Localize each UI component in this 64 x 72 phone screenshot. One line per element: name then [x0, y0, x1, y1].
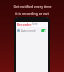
staticText: it is recording or not [15, 11, 49, 16]
staticText: Auto record [21, 29, 36, 33]
staticText: Recorder [17, 23, 32, 27]
staticText: Settings [32, 22, 38, 27]
button[interactable]: Recorder [16, 22, 48, 27]
button[interactable]: Auto record [16, 27, 48, 34]
staticText: Get notified every time [13, 4, 52, 9]
button[interactable]: Toggle auto record [41, 29, 46, 32]
